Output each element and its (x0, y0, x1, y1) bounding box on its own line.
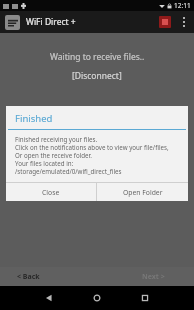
staticText: /storage/emulated/0/wifi_direct_files (15, 167, 122, 175)
button[interactable]: < Back (17, 272, 40, 282)
button[interactable]: Close (6, 183, 96, 201)
button[interactable]: Next > (142, 272, 165, 282)
staticText: Your files located in: (15, 159, 74, 167)
staticText: Close (42, 188, 60, 197)
button[interactable]: More options (178, 11, 189, 33)
staticText: Next > (142, 272, 165, 282)
staticText: WiFi Direct + (26, 16, 76, 28)
button[interactable]: Stop (159, 16, 171, 28)
staticText: [Disconnect] (72, 70, 122, 82)
button[interactable]: App icon (5, 15, 20, 30)
button[interactable]: Recents (121, 286, 169, 310)
button[interactable]: Back (25, 286, 73, 310)
staticText: Waiting to receive files.. (50, 51, 145, 63)
button[interactable]: [Disconnect] (72, 70, 122, 82)
staticText: Finished (15, 112, 53, 125)
staticText: Click on the notifications above to view… (15, 143, 169, 151)
staticText: Open Folder (123, 188, 163, 197)
staticText: Or open the receive folder. (15, 151, 92, 159)
staticText: 12:11 (174, 1, 191, 10)
button[interactable]: Open Folder (97, 183, 188, 201)
button[interactable]: Home (73, 286, 121, 310)
staticText: Finished receiving your files. (15, 135, 98, 143)
staticText: < Back (17, 272, 40, 282)
